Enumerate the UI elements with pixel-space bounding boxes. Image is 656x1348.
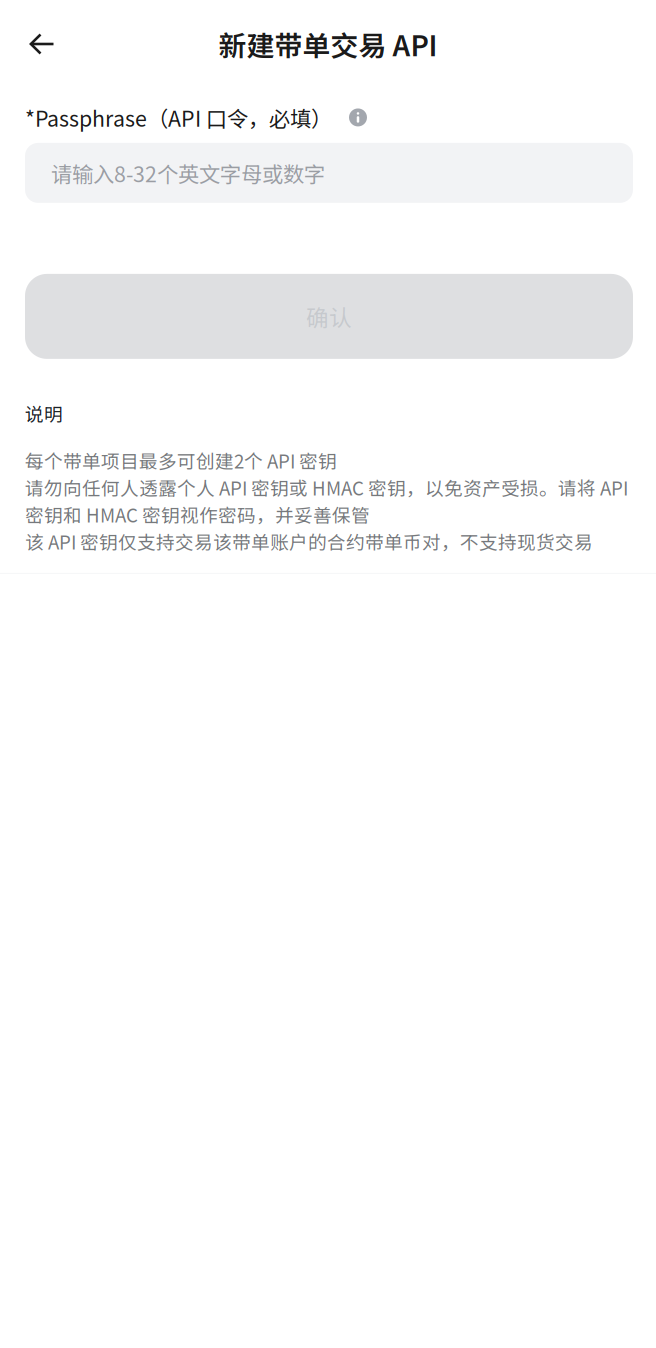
button[interactable]: 确认 bbox=[25, 274, 633, 359]
staticText: 请勿向任何人透露个人 API 密钥或 HMAC 密钥，以免资产受损。请将 API bbox=[25, 474, 628, 501]
staticText: 请输入8-32个英文字母或数字 bbox=[51, 157, 325, 188]
staticText: 该 API 密钥仅支持交易该带单账户的合约带单币对，不支持现货交易 bbox=[25, 528, 593, 555]
staticText: 密钥和 HMAC 密钥视作密码，并妥善保管 bbox=[25, 501, 370, 528]
button[interactable]: 返回 bbox=[14, 16, 70, 72]
staticText: *Passphrase（API 口令，必填） bbox=[25, 102, 332, 133]
staticText: 说明 bbox=[25, 400, 63, 427]
staticText: 新建带单交易 API bbox=[218, 24, 437, 64]
button[interactable]: 说明 bbox=[332, 103, 371, 131]
staticText: 确认 bbox=[306, 300, 352, 333]
staticText: 每个带单项目最多可创建2个 API 密钥 bbox=[25, 447, 337, 474]
